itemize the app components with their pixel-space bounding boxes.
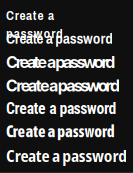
staticText: Create a password (6, 76, 120, 95)
staticText: Create a password (6, 28, 113, 49)
staticText: Create a password (6, 53, 115, 72)
staticText: Create a password (6, 145, 127, 167)
staticText: Create a password (6, 122, 115, 141)
staticText: Create a password (6, 99, 117, 118)
staticText: Create a password (6, 6, 115, 24)
